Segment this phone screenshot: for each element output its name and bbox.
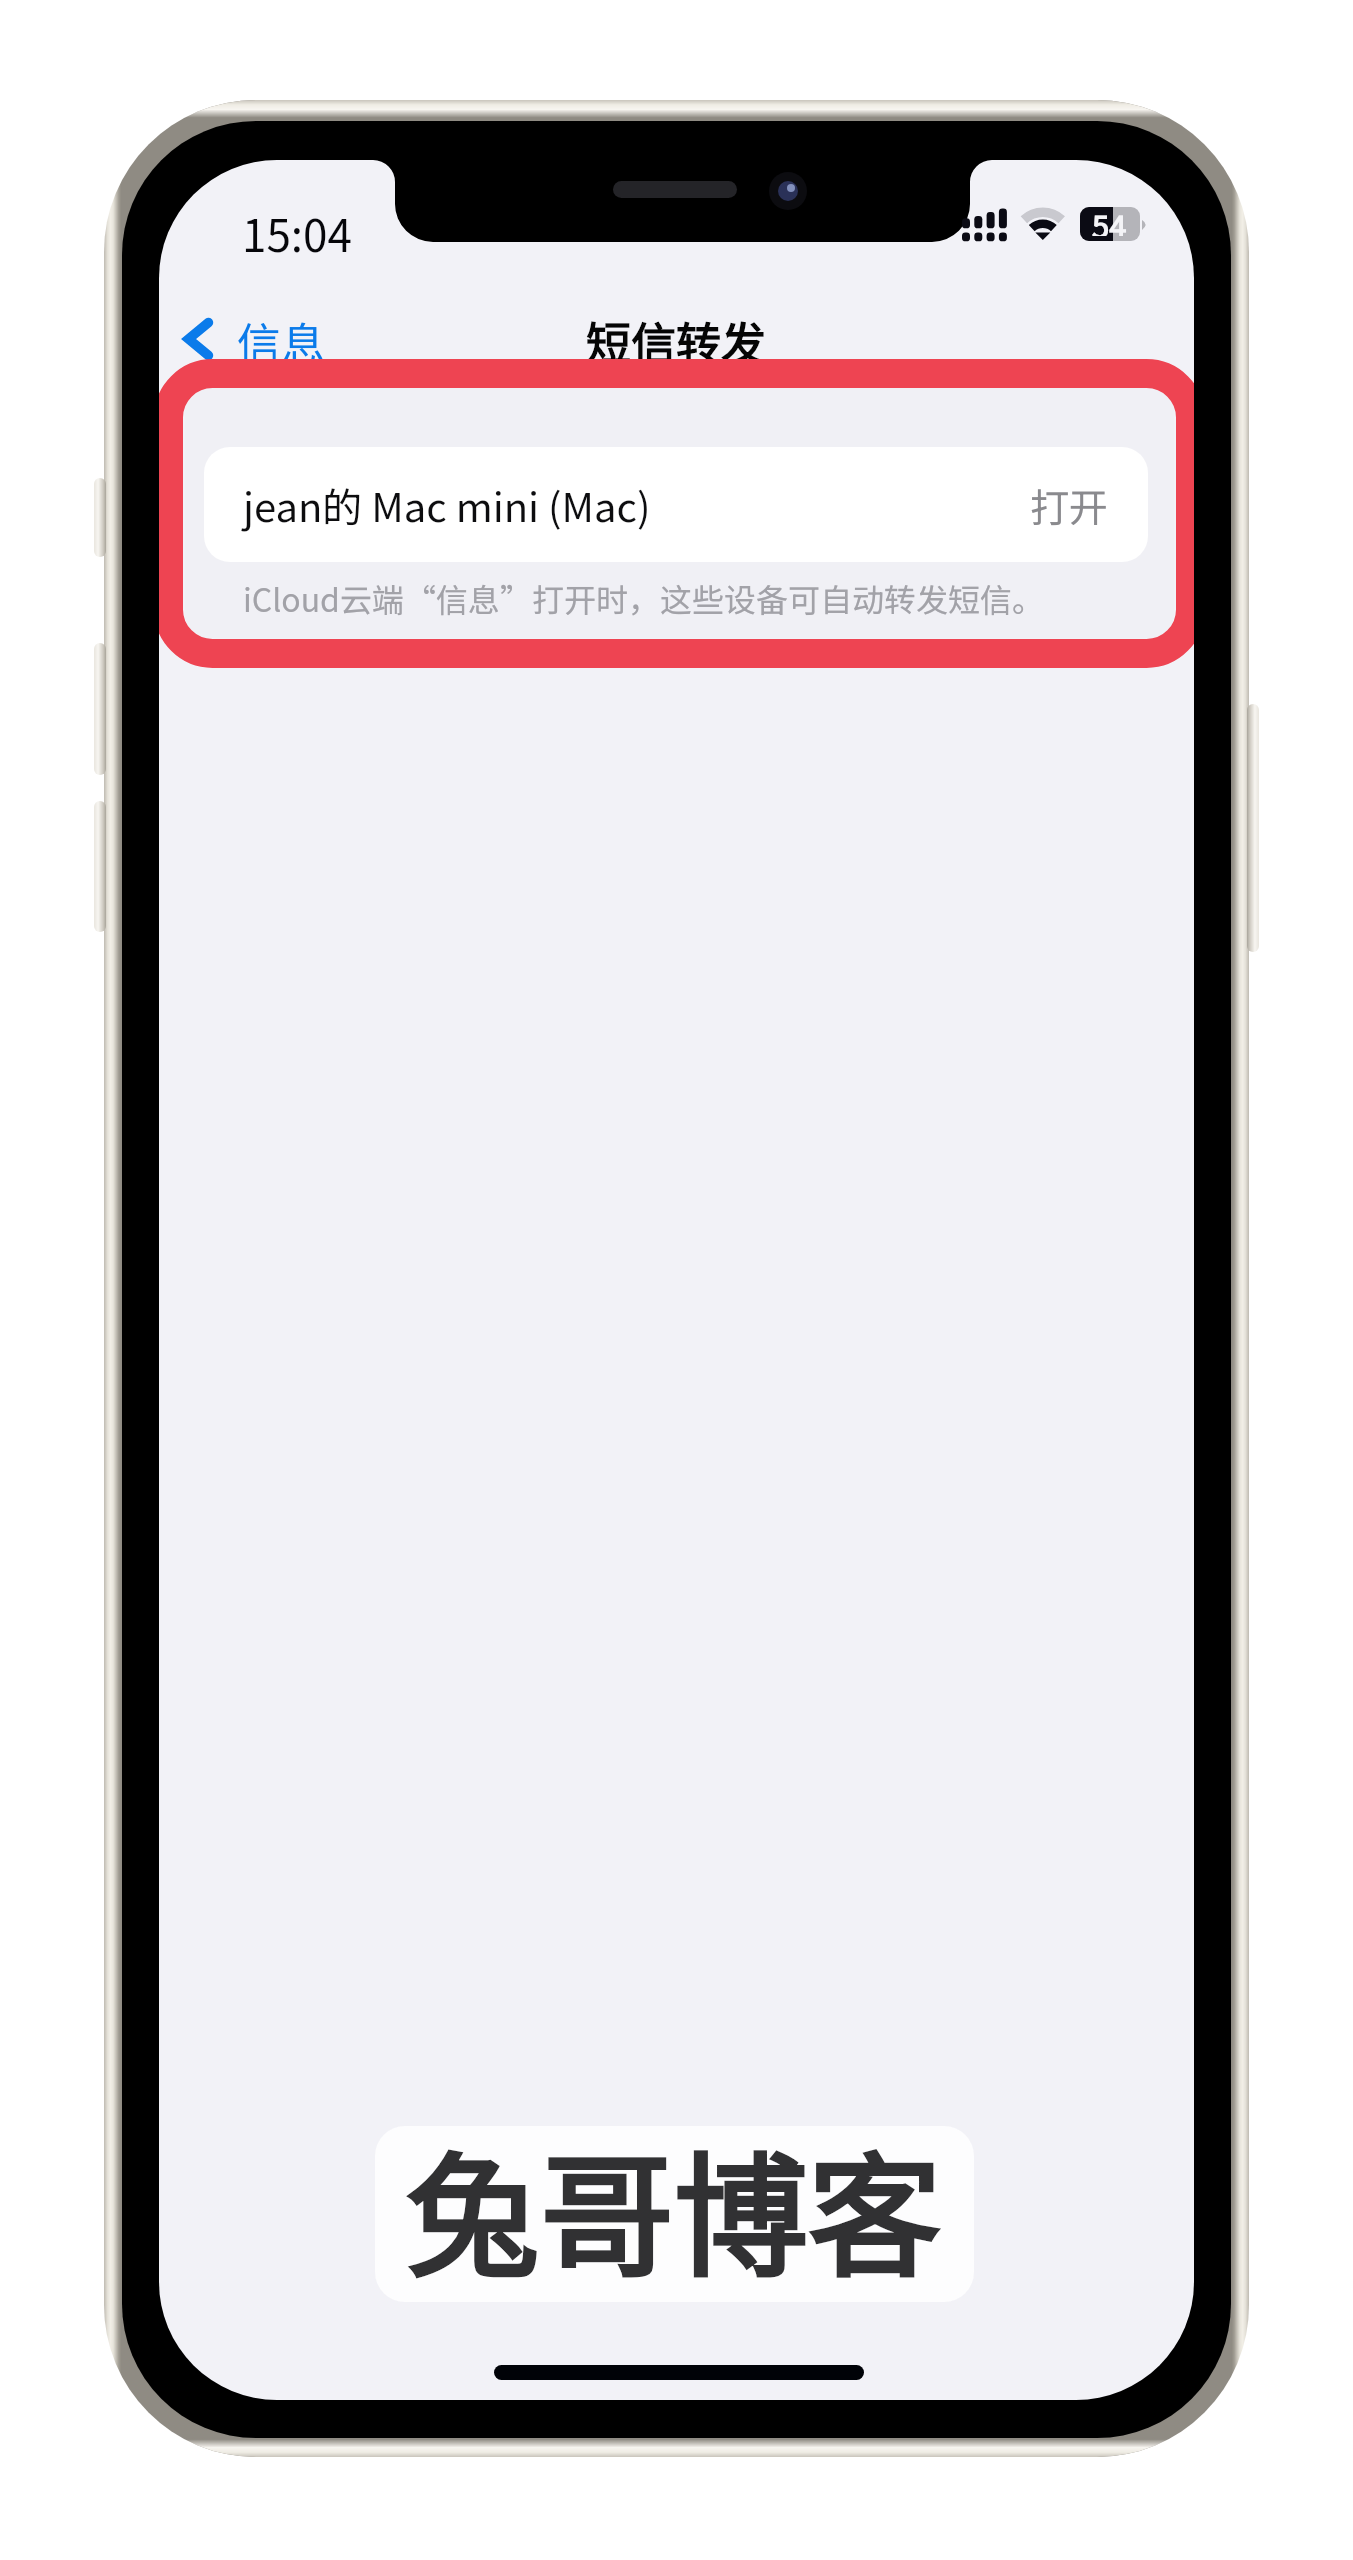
staticText: iCloud云端“信息”打开时，这些设备可自动转发短信。 — [243, 575, 1044, 621]
staticText: 15:04 — [242, 201, 352, 265]
staticText: 兔哥博客 — [406, 2126, 943, 2286]
staticText: 打开 — [1030, 477, 1109, 533]
button[interactable]: jean的 Mac mini (Mac) — [204, 447, 1148, 562]
button[interactable]: 信息 — [171, 303, 341, 375]
staticText: jean的 Mac mini (Mac) — [243, 476, 651, 534]
staticText: 短信转发 — [586, 308, 767, 373]
staticText: 54 — [1092, 202, 1127, 236]
staticText: 信息 — [237, 309, 325, 373]
